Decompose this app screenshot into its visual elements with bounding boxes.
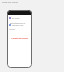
staticText: Create your account: [2, 1, 18, 3]
staticText: Email address for you: [10, 22, 26, 24]
staticText: Full name: [12, 17, 20, 19]
staticText: Confirm: [9, 28, 16, 30]
staticText: Password rules: [12, 24, 24, 26]
button[interactable]: Password rules: [9, 24, 24, 26]
staticText: Create account: [7, 37, 32, 40]
button[interactable]: Full name: [9, 17, 20, 19]
